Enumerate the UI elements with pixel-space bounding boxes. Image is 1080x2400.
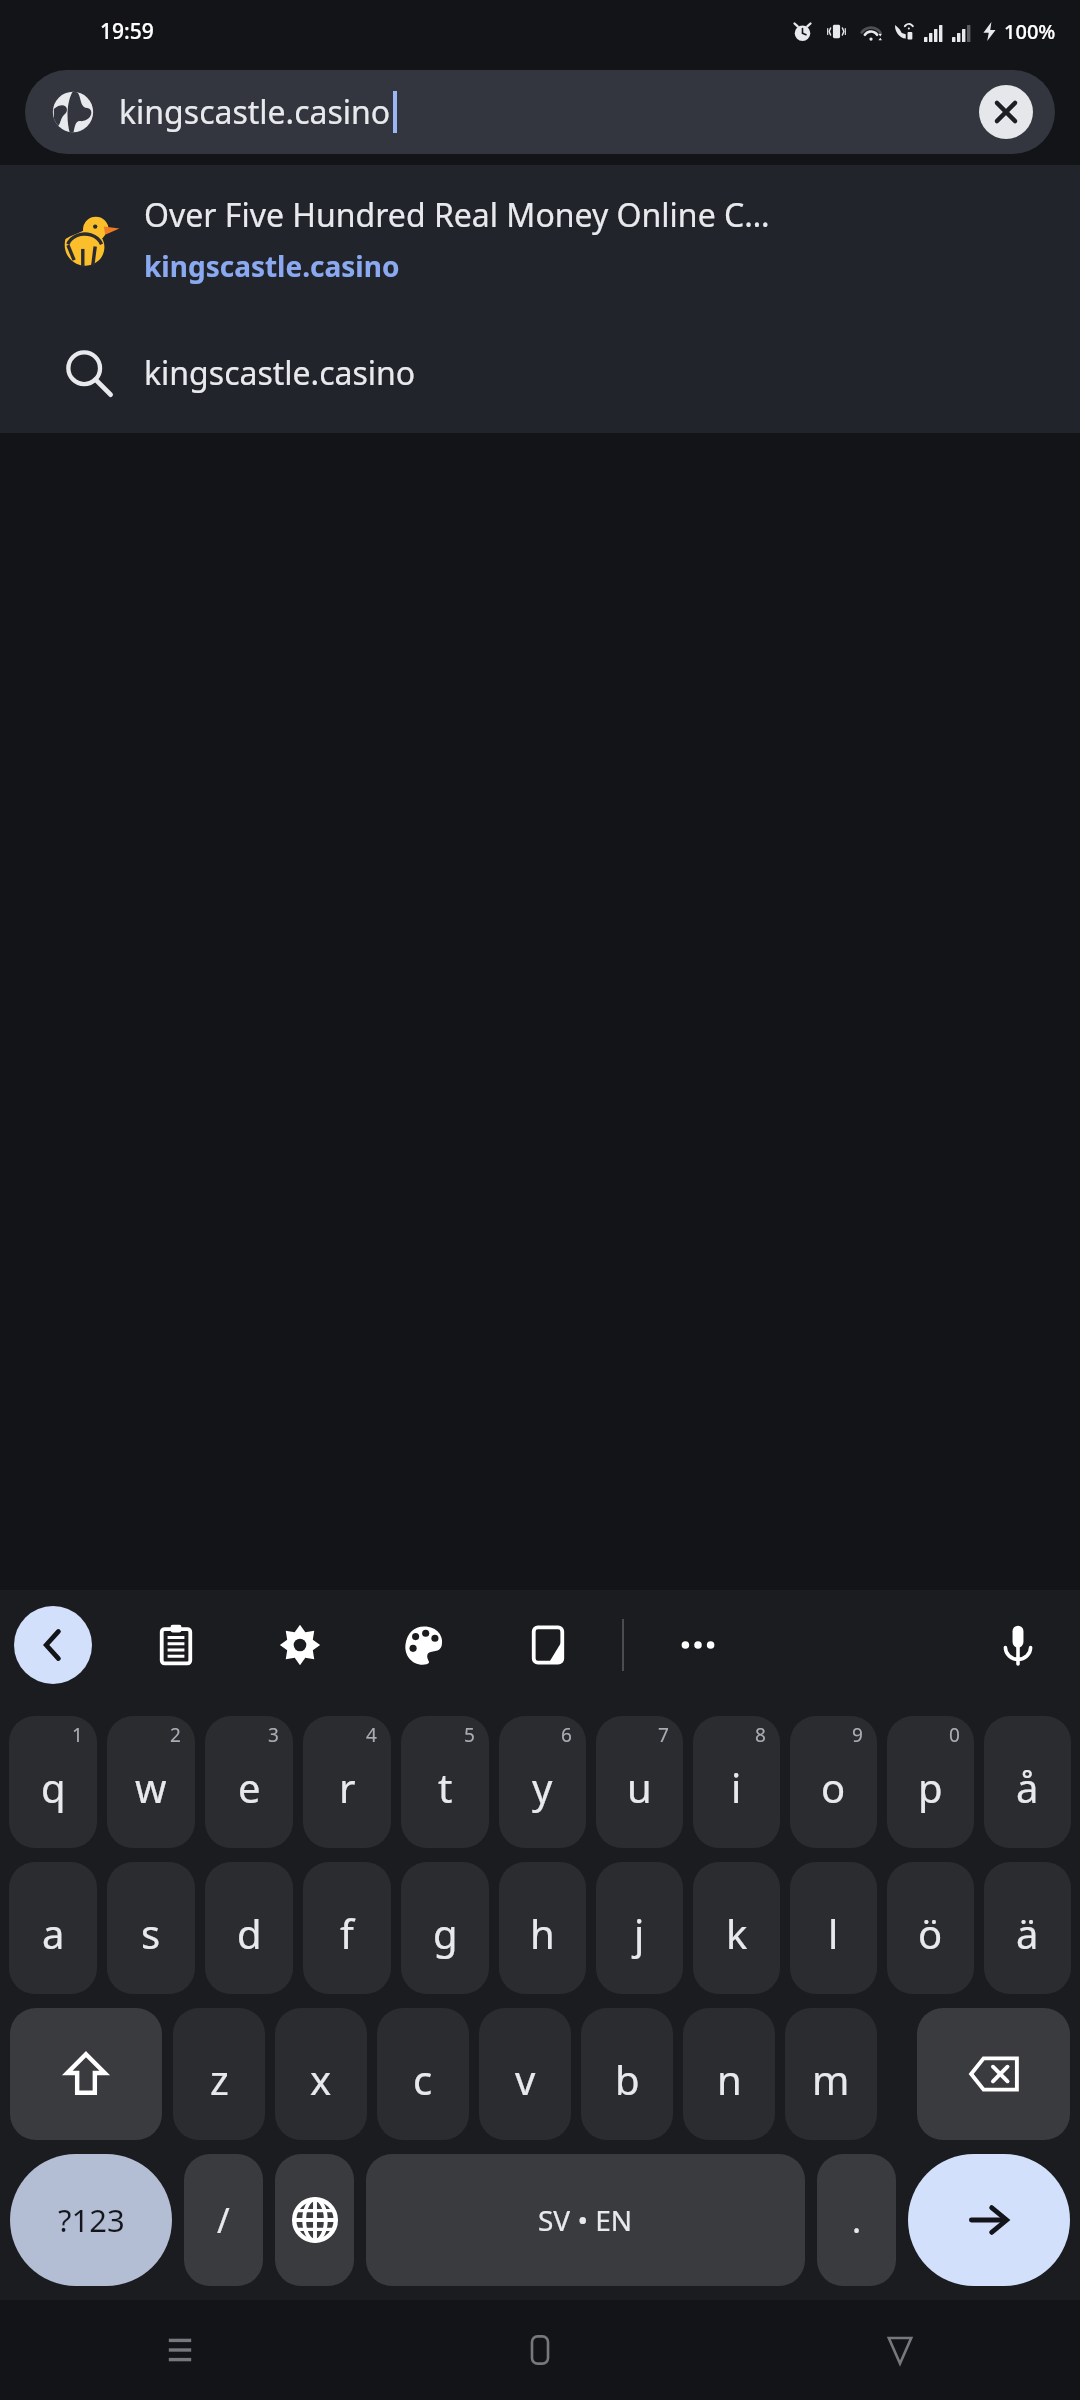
- button[interactable]: l: [790, 1862, 877, 1994]
- button[interactable]: Stickers: [514, 1611, 582, 1679]
- staticText: å: [1016, 1760, 1039, 1814]
- button[interactable]: m: [785, 2008, 877, 2140]
- staticText: u: [627, 1760, 652, 1814]
- button[interactable]: s: [107, 1862, 195, 1994]
- button[interactable]: c: [377, 2008, 469, 2140]
- staticText: 2: [170, 1722, 181, 1748]
- staticText: h: [530, 1906, 555, 1960]
- button[interactable]: Clipboard: [142, 1611, 210, 1679]
- staticText: 8: [755, 1722, 766, 1748]
- button[interactable]: i: [693, 1716, 780, 1848]
- button[interactable]: ä: [984, 1862, 1071, 1994]
- staticText: Over Five Hundred Real Money Online C…: [144, 193, 770, 237]
- button[interactable]: Shift: [10, 2008, 162, 2140]
- button[interactable]: Home: [360, 2300, 720, 2400]
- staticText: x: [310, 2052, 332, 2106]
- staticText: SV • EN: [538, 2201, 633, 2239]
- staticText: w: [135, 1760, 167, 1814]
- staticText: ö: [918, 1906, 943, 1960]
- button[interactable]: x: [275, 2008, 367, 2140]
- staticText: 5: [464, 1722, 475, 1748]
- button[interactable]: k: [693, 1862, 780, 1994]
- button[interactable]: Backspace: [917, 2008, 1070, 2140]
- staticText: d: [237, 1906, 262, 1960]
- staticText: r: [339, 1760, 356, 1814]
- staticText: 7: [658, 1722, 669, 1748]
- staticText: c: [413, 2052, 433, 2106]
- button[interactable]: y: [499, 1716, 586, 1848]
- button[interactable]: Clear: [979, 85, 1033, 139]
- staticText: 6: [561, 1722, 572, 1748]
- staticText: a: [42, 1906, 65, 1960]
- staticText: n: [717, 2052, 742, 2106]
- staticText: ?123: [58, 2199, 125, 2241]
- button[interactable]: b: [581, 2008, 673, 2140]
- button[interactable]: Settings: [266, 1611, 334, 1679]
- button[interactable]: z: [173, 2008, 265, 2140]
- button[interactable]: .: [817, 2154, 896, 2286]
- staticText: 3: [268, 1722, 279, 1748]
- staticText: 9: [852, 1722, 863, 1748]
- staticText: 100%: [1004, 18, 1056, 45]
- button[interactable]: r: [303, 1716, 391, 1848]
- button[interactable]: q: [9, 1716, 97, 1848]
- button[interactable]: /: [184, 2154, 263, 2286]
- staticText: g: [433, 1906, 458, 1960]
- staticText: kingscastle.casino: [119, 90, 391, 134]
- staticText: p: [918, 1760, 943, 1814]
- button[interactable]: ö: [887, 1862, 974, 1994]
- staticText: m: [812, 2052, 850, 2106]
- button[interactable]: Back: [720, 2300, 1080, 2400]
- button[interactable]: kingscastle.casino: [0, 313, 1080, 433]
- staticText: kingscastle.casino: [144, 351, 416, 395]
- button[interactable]: t: [401, 1716, 489, 1848]
- button[interactable]: j: [596, 1862, 683, 1994]
- button[interactable]: n: [683, 2008, 775, 2140]
- staticText: t: [438, 1760, 453, 1814]
- button[interactable]: SV • EN: [366, 2154, 805, 2286]
- staticText: 1: [72, 1722, 83, 1748]
- button[interactable]: w: [107, 1716, 195, 1848]
- button[interactable]: d: [205, 1862, 293, 1994]
- staticText: y: [532, 1760, 553, 1814]
- button[interactable]: a: [9, 1862, 97, 1994]
- button[interactable]: ?123: [10, 2154, 172, 2286]
- staticText: l: [828, 1906, 839, 1960]
- button[interactable]: f: [303, 1862, 391, 1994]
- button[interactable]: Recents: [0, 2300, 360, 2400]
- button[interactable]: Back: [14, 1606, 92, 1684]
- button[interactable]: Switch language: [275, 2154, 354, 2286]
- staticText: s: [141, 1906, 161, 1960]
- button[interactable]: v: [479, 2008, 571, 2140]
- staticText: 19:59: [100, 17, 154, 46]
- button[interactable]: Over Five Hundred Real Money Online C…: [0, 165, 1080, 313]
- staticText: kingscastle.casino: [144, 247, 400, 285]
- button[interactable]: e: [205, 1716, 293, 1848]
- staticText: k: [726, 1906, 748, 1960]
- staticText: /: [217, 2197, 230, 2243]
- button[interactable]: Go: [908, 2154, 1070, 2286]
- staticText: e: [238, 1760, 261, 1814]
- button[interactable]: Theme: [390, 1611, 458, 1679]
- button[interactable]: p: [887, 1716, 974, 1848]
- button[interactable]: å: [984, 1716, 1071, 1848]
- button[interactable]: u: [596, 1716, 683, 1848]
- staticText: j: [634, 1906, 645, 1960]
- staticText: .: [852, 2197, 862, 2243]
- staticText: ä: [1016, 1906, 1039, 1960]
- staticText: 4: [366, 1722, 377, 1748]
- staticText: q: [41, 1760, 66, 1814]
- button[interactable]: More options: [664, 1611, 732, 1679]
- staticText: v: [515, 2052, 536, 2106]
- button[interactable]: g: [401, 1862, 489, 1994]
- staticText: z: [210, 2052, 229, 2106]
- button[interactable]: Voice input: [984, 1611, 1052, 1679]
- staticText: o: [821, 1760, 846, 1814]
- staticText: b: [615, 2052, 640, 2106]
- button[interactable]: o: [790, 1716, 877, 1848]
- button[interactable]: h: [499, 1862, 586, 1994]
- staticText: f: [340, 1906, 354, 1960]
- button[interactable]: kingscastle.casino: [25, 70, 1055, 154]
- staticText: i: [731, 1760, 742, 1814]
- staticText: 0: [949, 1722, 960, 1748]
